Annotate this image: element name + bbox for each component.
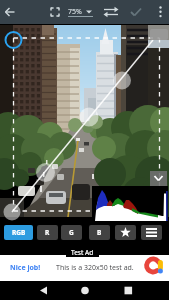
staticText: 75% — [68, 7, 82, 17]
staticText: Test Ad — [71, 248, 94, 257]
button[interactable]: RGB — [4, 225, 33, 240]
staticText: This is a 320x50 test ad. — [56, 263, 134, 273]
button[interactable] — [124, 0, 148, 24]
button[interactable] — [30, 281, 58, 300]
button[interactable] — [141, 225, 162, 240]
staticText: Nice job! — [10, 263, 41, 273]
button[interactable] — [43, 0, 67, 24]
button[interactable]: B — [89, 225, 110, 240]
button[interactable] — [112, 281, 140, 300]
button[interactable]: G — [61, 225, 82, 240]
button[interactable] — [99, 0, 123, 24]
staticText: B — [97, 228, 102, 237]
button[interactable]: R — [37, 225, 58, 240]
staticText: RGB — [12, 228, 26, 237]
button[interactable] — [0, 0, 24, 24]
button[interactable]: Nice job! — [0, 255, 169, 281]
button[interactable] — [71, 281, 99, 300]
staticText: R — [45, 228, 50, 237]
button[interactable] — [115, 225, 136, 240]
button[interactable] — [150, 171, 167, 186]
staticText: G — [69, 228, 74, 237]
button[interactable]: 75% — [64, 0, 96, 24]
button[interactable] — [148, 0, 169, 24]
